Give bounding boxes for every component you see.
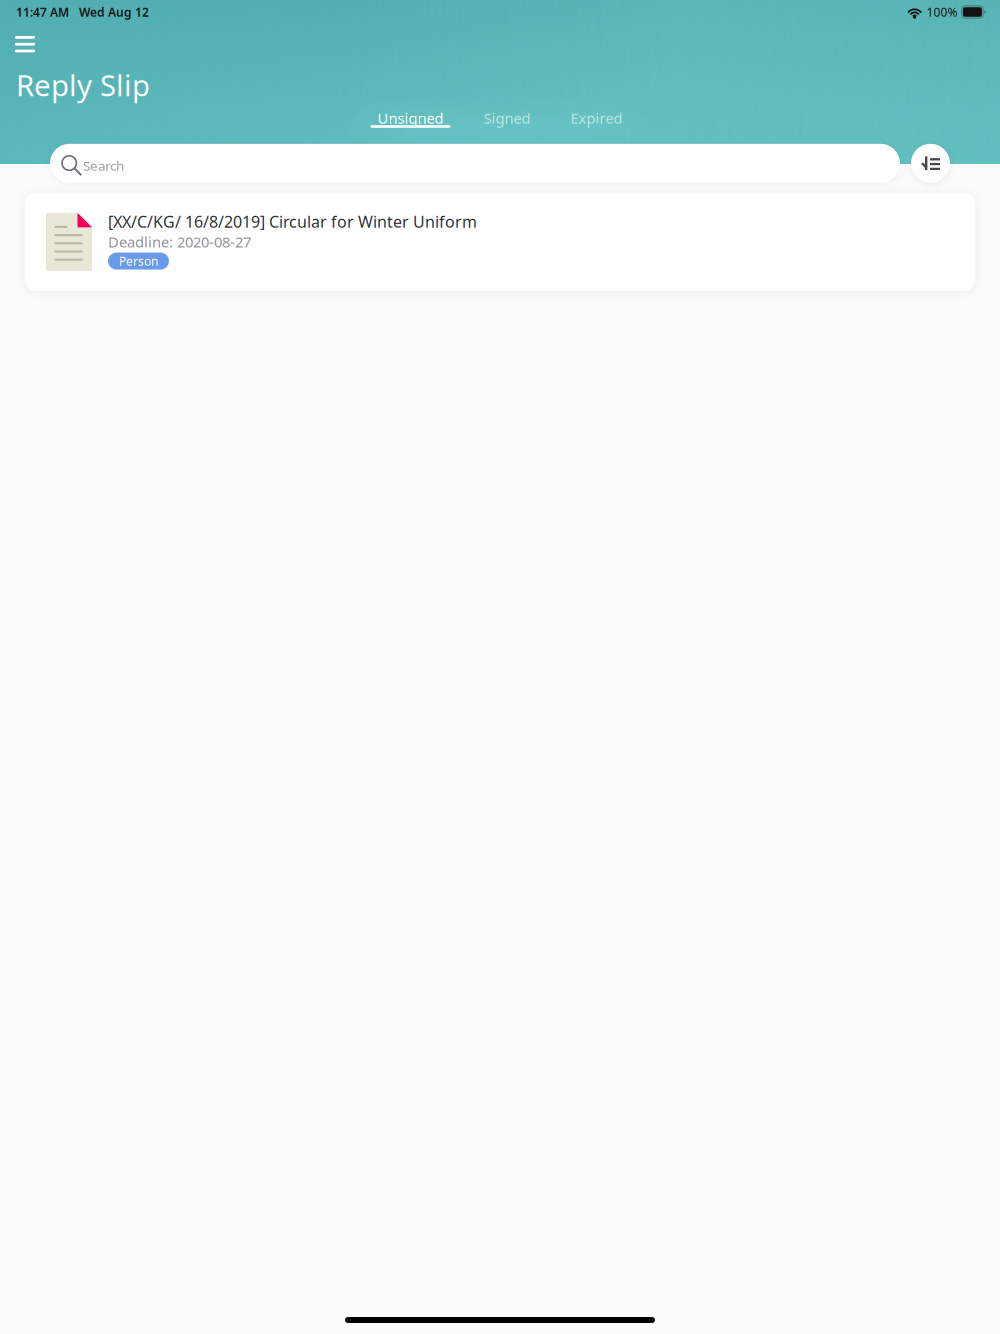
staticText: Signed xyxy=(483,108,530,128)
button[interactable]: Unsigned xyxy=(377,104,443,139)
staticText: Unsigned xyxy=(377,108,443,128)
staticText: Deadline: 2020-08-27 xyxy=(108,232,251,252)
staticText: 11:47 AM xyxy=(16,4,69,20)
staticText: Wed Aug 12 xyxy=(79,4,149,20)
button[interactable]: Search xyxy=(50,144,900,183)
button[interactable]: Expired xyxy=(570,104,622,139)
button[interactable]: [XX/C/KG/ 16/8/2019] Circular for Winter… xyxy=(25,193,975,291)
staticText: 100% xyxy=(927,4,958,20)
staticText: Search xyxy=(83,157,124,174)
button[interactable]: Menu xyxy=(0,28,53,60)
staticText: [XX/C/KG/ 16/8/2019] Circular for Winter… xyxy=(108,211,477,232)
staticText: Person xyxy=(119,253,158,269)
button[interactable]: Sort xyxy=(911,144,950,183)
button[interactable]: Signed xyxy=(483,104,530,139)
staticText: Reply Slip xyxy=(16,65,150,104)
staticText: Expired xyxy=(570,108,622,128)
